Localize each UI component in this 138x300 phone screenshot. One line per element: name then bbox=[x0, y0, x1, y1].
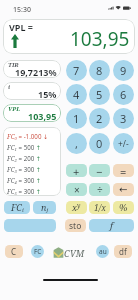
button[interactable]: au bbox=[96, 245, 109, 258]
staticText: 3 bbox=[120, 111, 127, 126]
staticText: 1/x bbox=[94, 202, 106, 214]
staticText: f bbox=[110, 219, 114, 232]
button[interactable]: × bbox=[66, 183, 87, 196]
staticText: 8 bbox=[96, 63, 103, 78]
button[interactable]: i bbox=[3, 82, 61, 100]
button[interactable]: 2 bbox=[89, 108, 110, 129]
button[interactable]: 9 bbox=[113, 60, 134, 81]
button[interactable]: + bbox=[66, 164, 87, 177]
staticText: , bbox=[75, 136, 78, 151]
staticText: C bbox=[11, 246, 17, 257]
button[interactable]: = bbox=[113, 164, 134, 177]
button[interactable]: VPL = bbox=[3, 19, 135, 54]
staticText: 4 bbox=[73, 87, 80, 102]
button[interactable]: FC bbox=[31, 245, 44, 258]
staticText: sto bbox=[69, 220, 82, 232]
staticText: 1 bbox=[73, 111, 80, 126]
staticText: VPL bbox=[8, 105, 21, 113]
button[interactable]: C bbox=[5, 245, 23, 258]
button[interactable]: ÷ bbox=[89, 183, 110, 196]
staticText: 9 bbox=[120, 63, 127, 78]
button[interactable]: VPL bbox=[3, 104, 61, 122]
staticText: TIR bbox=[8, 61, 19, 69]
staticText: CVM bbox=[64, 247, 85, 259]
button[interactable]: nj bbox=[33, 201, 56, 214]
staticText: 0 bbox=[96, 136, 103, 151]
staticText: ÷ bbox=[97, 183, 103, 196]
staticText: FC5 = 300 ↑ bbox=[7, 187, 42, 196]
staticText: + bbox=[73, 164, 80, 177]
button[interactable]: % bbox=[113, 201, 134, 214]
staticText: xy bbox=[72, 201, 81, 214]
button[interactable]: 0 bbox=[89, 133, 110, 154]
button[interactable]: 8 bbox=[89, 60, 110, 81]
button[interactable]: FC0 = -1.000 ↓ bbox=[7, 132, 49, 143]
other: Status icons bbox=[107, 4, 133, 11]
button[interactable]: 3 bbox=[113, 108, 134, 129]
staticText: = bbox=[120, 164, 127, 177]
staticText: nj bbox=[41, 201, 49, 214]
button[interactable]: TIR bbox=[3, 60, 61, 78]
staticText: df bbox=[119, 246, 127, 257]
button[interactable]: sto bbox=[65, 219, 86, 232]
button[interactable]: FC5 = 300 ↑ bbox=[7, 187, 42, 196]
button[interactable]: +/- bbox=[113, 133, 134, 154]
other: CVM bbox=[53, 247, 64, 258]
button[interactable]: , bbox=[66, 133, 87, 154]
button[interactable]: 1/x bbox=[89, 201, 110, 214]
staticText: FC4 = 300 ↑ bbox=[7, 176, 42, 185]
staticText: FCi bbox=[11, 201, 24, 214]
staticText: 6 bbox=[120, 87, 127, 102]
staticText: × bbox=[74, 183, 80, 196]
staticText: VPL = bbox=[9, 21, 33, 33]
button[interactable]: 5 bbox=[89, 84, 110, 105]
staticText: 2 bbox=[96, 111, 103, 126]
button[interactable]: FC2 = 200 ↑ bbox=[7, 154, 42, 165]
button[interactable]: df bbox=[114, 245, 132, 258]
staticText: FC2 = 200 ↑ bbox=[7, 154, 42, 163]
staticText: 103,95 bbox=[70, 26, 130, 52]
staticText: +/- bbox=[118, 138, 129, 150]
staticText: FC3 = 300 ↑ bbox=[7, 165, 42, 174]
staticText: 19,7213% bbox=[15, 66, 57, 78]
staticText: 15% bbox=[38, 88, 57, 100]
button[interactable]: 6 bbox=[113, 84, 134, 105]
button[interactable]: f bbox=[89, 219, 134, 232]
staticText: 15:30 bbox=[13, 5, 31, 15]
button[interactable]: 1 bbox=[66, 108, 87, 129]
button[interactable]: ← bbox=[113, 183, 134, 196]
staticText: FC0 = -1.000 ↓ bbox=[7, 132, 49, 141]
staticText: ← bbox=[119, 184, 128, 196]
button[interactable]: FCi bbox=[4, 201, 30, 214]
staticText: 7 bbox=[73, 63, 80, 78]
button[interactable]: 7 bbox=[66, 60, 87, 81]
button[interactable]: − bbox=[89, 164, 110, 177]
button[interactable]: xy bbox=[66, 201, 87, 214]
staticText: 103,95 bbox=[28, 110, 57, 122]
staticText: i bbox=[8, 83, 11, 91]
staticText: 5 bbox=[96, 87, 103, 102]
button[interactable]: FC4 = 300 ↑ bbox=[7, 176, 42, 187]
button[interactable]: FC1 = 500 ↑ bbox=[7, 143, 42, 154]
button[interactable] bbox=[4, 219, 56, 232]
staticText: FC1 = 500 ↑ bbox=[7, 143, 42, 152]
staticText: − bbox=[96, 164, 103, 177]
staticText: % bbox=[119, 201, 128, 214]
button[interactable]: 4 bbox=[66, 84, 87, 105]
staticText: au bbox=[99, 247, 107, 256]
staticText: FC bbox=[34, 247, 42, 256]
button[interactable]: FC3 = 300 ↑ bbox=[7, 165, 42, 176]
